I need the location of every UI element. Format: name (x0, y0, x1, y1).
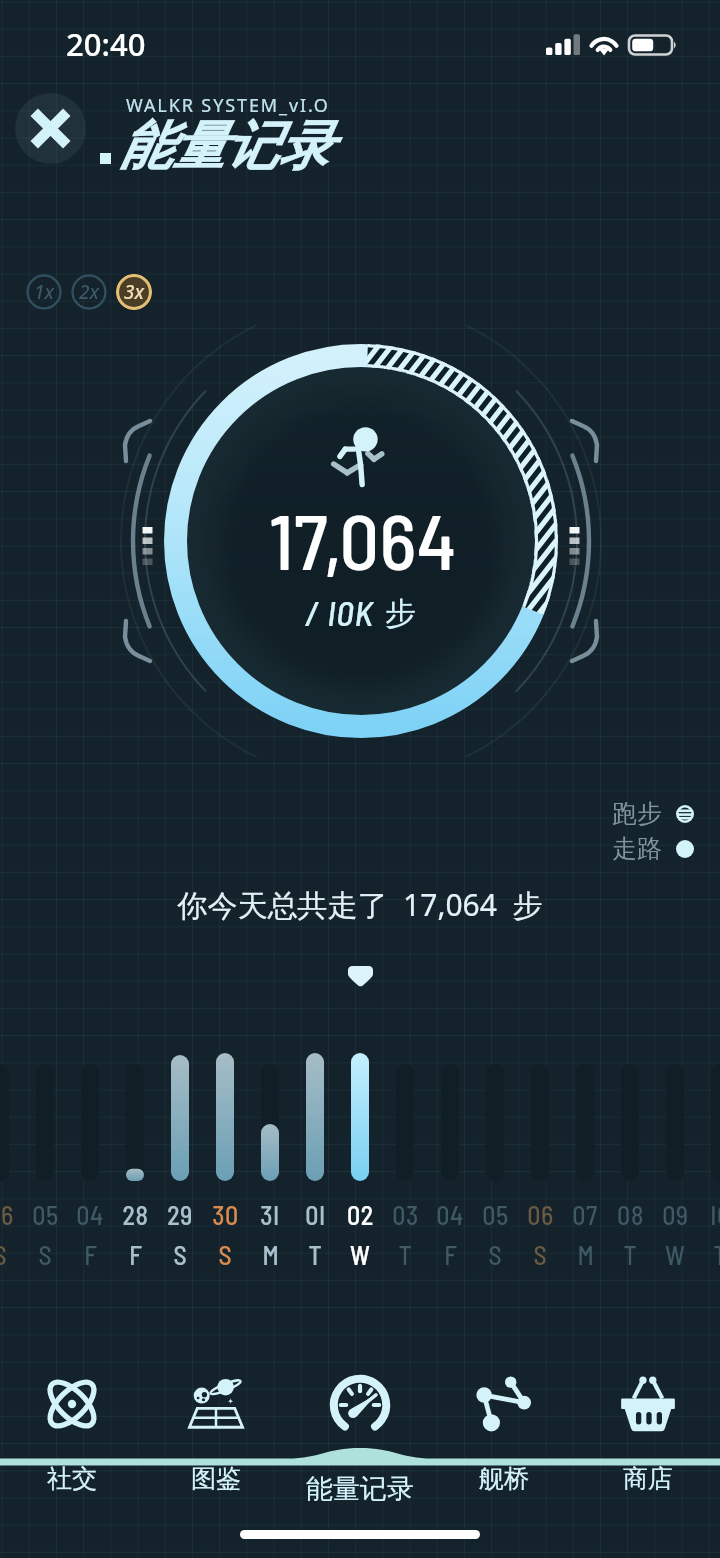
staticText: 09 (662, 1199, 689, 1230)
staticText: F (129, 1239, 142, 1270)
staticText: T (308, 1239, 322, 1270)
staticText: T (713, 1239, 720, 1270)
staticText: 图鉴 (144, 1463, 288, 1494)
staticText: F (444, 1239, 457, 1270)
staticText: 06 (0, 1199, 14, 1230)
staticText: 03 (392, 1199, 419, 1230)
button[interactable]: 能量记录 (288, 1350, 432, 1510)
staticText: 能量记录 (119, 113, 331, 180)
button[interactable]: 跑步 (612, 798, 694, 829)
staticText: 05 (482, 1199, 509, 1230)
staticText: 28 (122, 1199, 149, 1230)
staticText: S (38, 1239, 52, 1270)
staticText: 06 (527, 1199, 554, 1230)
staticText: 商店 (576, 1463, 720, 1494)
staticText: 04 (76, 1199, 104, 1230)
staticText: I0 (710, 1199, 720, 1230)
button[interactable]: 走路 (612, 833, 694, 864)
button[interactable]: 3x (116, 274, 152, 310)
staticText: S (488, 1239, 502, 1270)
staticText: M (262, 1239, 279, 1270)
staticText: 20:40 (66, 23, 146, 65)
staticText: 能量记录 (288, 1472, 432, 1506)
staticText: 04 (436, 1199, 464, 1230)
staticText: 1x (34, 279, 54, 305)
staticText: M (577, 1239, 594, 1270)
staticText: 05 (32, 1199, 59, 1230)
button[interactable]: Close (15, 93, 86, 164)
staticText: 舰桥 (432, 1463, 576, 1494)
staticText: 3x (124, 279, 144, 305)
staticText: S (533, 1239, 547, 1270)
staticText: 17,064 (3, 492, 720, 586)
staticText: 2x (79, 279, 99, 305)
staticText: W (665, 1239, 685, 1270)
staticText: 3I (260, 1199, 280, 1230)
staticText: WALKR SYSTEM_vI.O (126, 93, 330, 118)
staticText: S (218, 1239, 232, 1270)
staticText: 07 (572, 1199, 598, 1230)
staticText: 跑步 (612, 798, 662, 829)
button[interactable]: 社交 (0, 1350, 144, 1510)
staticText: 走路 (612, 833, 662, 864)
staticText: T (398, 1239, 412, 1270)
button[interactable]: 商店 (576, 1350, 720, 1510)
staticText: F (84, 1239, 97, 1270)
staticText: 0I (305, 1199, 326, 1230)
staticText: / I0K (305, 591, 374, 633)
staticText: T (623, 1239, 637, 1270)
staticText: 08 (617, 1199, 644, 1230)
staticText: S (0, 1239, 7, 1270)
button[interactable]: 舰桥 (432, 1350, 576, 1510)
button[interactable]: 2x (71, 274, 107, 310)
button[interactable]: 1x (26, 274, 62, 310)
staticText: 02 (347, 1199, 374, 1230)
staticText: 社交 (0, 1463, 144, 1494)
staticText: 29 (167, 1199, 193, 1230)
staticText: 步 (385, 594, 416, 633)
staticText: S (173, 1239, 187, 1270)
staticText: 30 (212, 1199, 239, 1230)
button[interactable]: 图鉴 (144, 1350, 288, 1510)
staticText: 你今天总共走了 17,064 步 (0, 884, 720, 925)
staticText: W (350, 1239, 370, 1270)
